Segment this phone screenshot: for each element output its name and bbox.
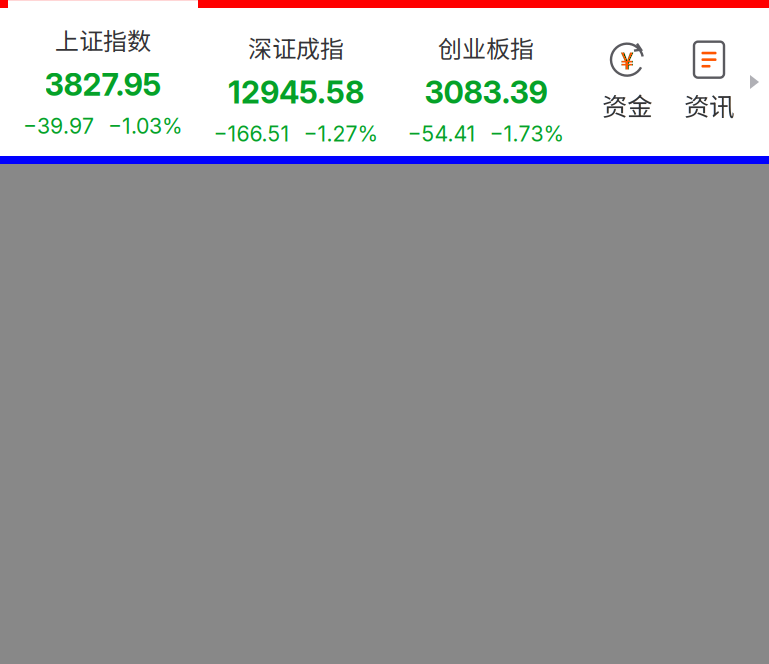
staticText: 3827.95	[44, 66, 161, 103]
staticText: −39.97	[23, 113, 94, 139]
staticText: ¥	[620, 43, 633, 76]
button[interactable]: ¥	[586, 32, 668, 132]
staticText: 深证成指	[248, 30, 344, 65]
staticText: 上证指数	[55, 22, 151, 57]
button[interactable]: 上证指数	[8, 8, 198, 156]
button[interactable]: 资讯	[668, 32, 750, 132]
staticText: 资金	[602, 87, 652, 123]
staticText: −1.03%	[108, 113, 183, 139]
staticText: −166.51	[213, 121, 289, 147]
staticText: 3083.39	[424, 74, 547, 111]
staticText: 资讯	[684, 87, 734, 123]
staticText: −1.27%	[303, 121, 378, 147]
staticText: −1.73%	[489, 121, 564, 147]
button[interactable]: 创业板指	[394, 8, 578, 156]
staticText: −54.41	[407, 121, 475, 147]
button[interactable]: 深证成指	[198, 8, 394, 156]
staticText: 12945.58	[228, 74, 364, 111]
staticText: 创业板指	[438, 30, 534, 65]
